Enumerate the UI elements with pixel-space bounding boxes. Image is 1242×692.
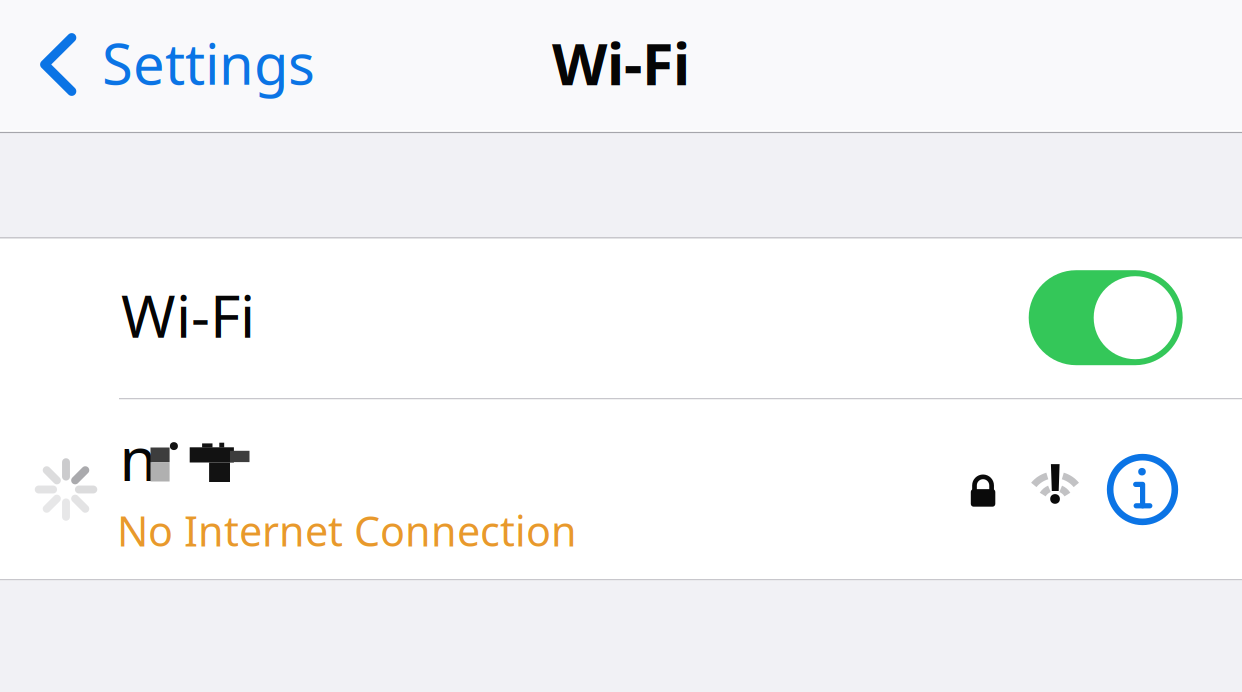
button[interactable]: Settings [0,0,312,133]
staticText: Wi-Fi [552,25,690,101]
staticText: No Internet Connection [117,503,577,558]
staticText: Wi-Fi [121,276,255,354]
staticText: n [119,418,156,498]
staticText: Settings [102,26,315,100]
button[interactable]: n [0,399,1242,580]
button[interactable]: Wi-Fi [0,237,1242,398]
button[interactable]: More Info [1093,440,1193,540]
